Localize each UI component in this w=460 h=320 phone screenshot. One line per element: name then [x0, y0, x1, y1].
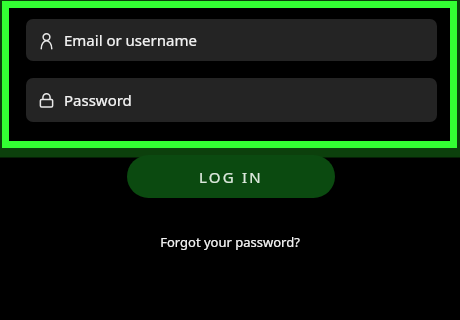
staticText: Password [64, 90, 132, 110]
staticText: LOG IN [199, 167, 263, 187]
staticText: Forgot your password? [160, 233, 300, 251]
button[interactable]: Forgot your password? [145, 231, 315, 253]
button[interactable]: Password [26, 78, 437, 122]
staticText: Email or username [64, 30, 197, 50]
button[interactable]: Email or username [26, 19, 437, 61]
button[interactable]: LOG IN [127, 155, 335, 198]
